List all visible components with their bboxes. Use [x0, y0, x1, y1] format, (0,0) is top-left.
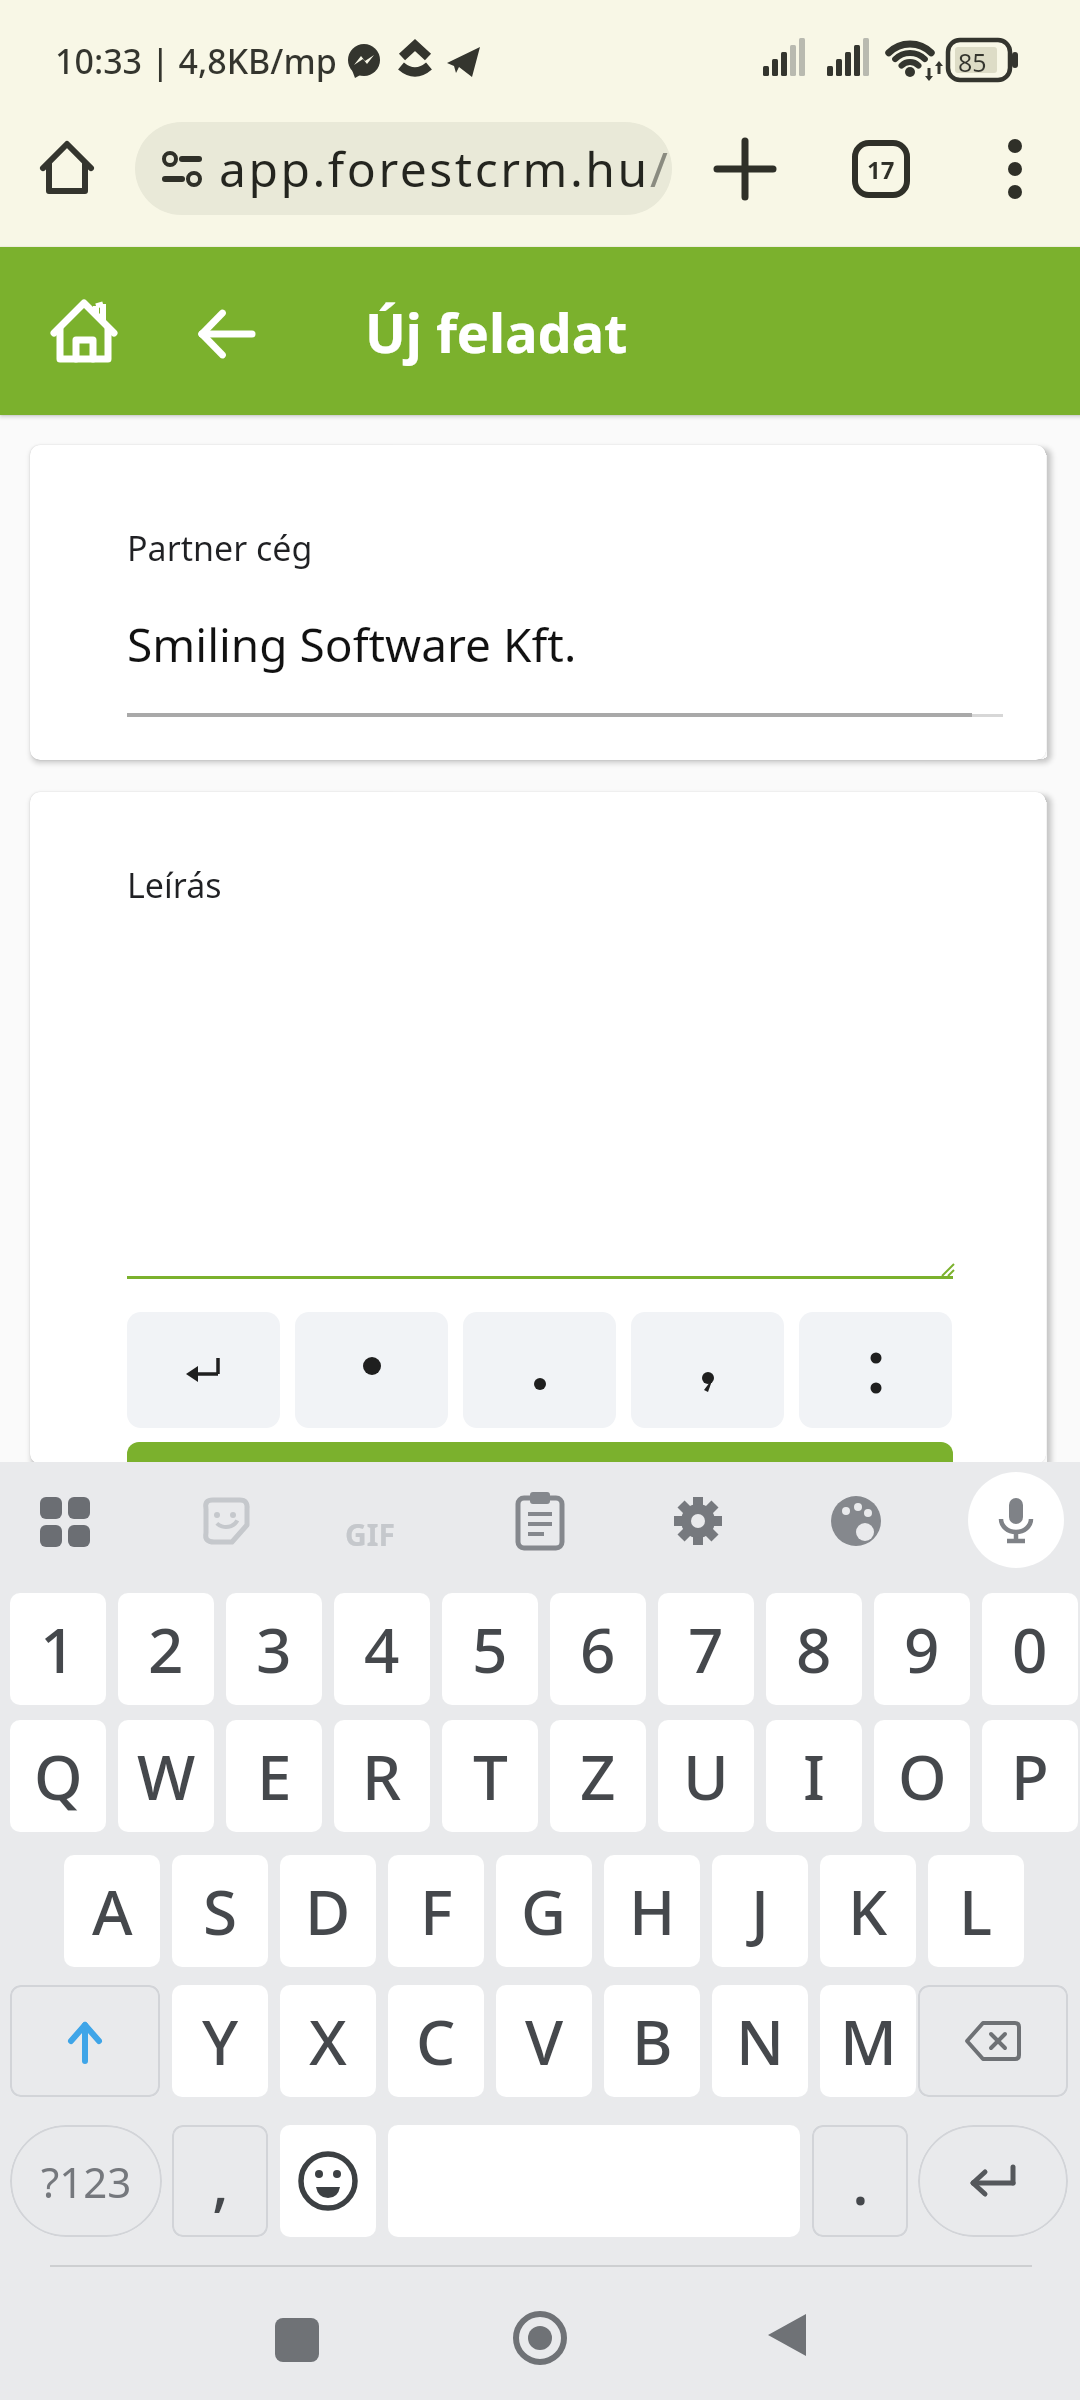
staticText: V [525, 1999, 564, 2083]
button[interactable]: 9 [874, 1593, 970, 1705]
staticText: J [751, 1869, 769, 1953]
staticText: . [852, 2139, 869, 2223]
button[interactable]: R [334, 1720, 430, 1832]
button[interactable] [51, 299, 117, 365]
button[interactable]: E [226, 1720, 322, 1832]
button[interactable] [918, 1985, 1068, 2097]
staticText: W [137, 1734, 196, 1818]
staticText: Új feladat [365, 295, 628, 369]
staticText: X [309, 1999, 347, 2083]
button[interactable] [512, 2310, 568, 2366]
staticText: Smiling Software Kft. [127, 613, 577, 676]
button[interactable]: P [982, 1720, 1078, 1832]
button[interactable]: A [64, 1855, 160, 1967]
button[interactable]: J [712, 1855, 808, 1967]
button[interactable]: app.forestcrm.hu [135, 122, 672, 215]
button[interactable] [764, 2312, 810, 2358]
button[interactable]: H [604, 1855, 700, 1967]
staticText: app.forestcrm.hu [219, 136, 650, 201]
staticText: K [848, 1869, 888, 1953]
button[interactable] [40, 1497, 90, 1547]
button[interactable] [10, 1985, 160, 2097]
button[interactable]: K [820, 1855, 916, 1967]
button[interactable] [295, 1312, 448, 1428]
button[interactable] [200, 1495, 252, 1547]
button[interactable]: 0 [982, 1593, 1078, 1705]
button[interactable] [968, 1472, 1064, 1568]
button[interactable]: Q [10, 1720, 106, 1832]
staticText: 0 [1012, 1607, 1048, 1691]
button[interactable]: . [812, 2125, 908, 2237]
button[interactable]: I [766, 1720, 862, 1832]
button[interactable]: V [496, 1985, 592, 2097]
button[interactable]: 1 [10, 1593, 106, 1705]
staticText: 4 [364, 1607, 400, 1691]
button[interactable]: N [712, 1985, 808, 2097]
button[interactable]: 6 [550, 1593, 646, 1705]
button[interactable] [127, 1312, 280, 1428]
staticText: C [416, 1999, 456, 2083]
button[interactable]: 4 [334, 1593, 430, 1705]
staticText: Partner cég [127, 525, 313, 571]
staticText: , [212, 2139, 229, 2223]
staticText: S [203, 1869, 238, 1953]
button[interactable]: C [388, 1985, 484, 2097]
button[interactable]: G [496, 1855, 592, 1967]
button[interactable]: GIF [345, 1514, 395, 1555]
button[interactable]: 7 [658, 1593, 754, 1705]
button[interactable]: 3 [226, 1593, 322, 1705]
button[interactable]: T [442, 1720, 538, 1832]
button[interactable]: W [118, 1720, 214, 1832]
button[interactable] [918, 2125, 1068, 2237]
staticText: O [898, 1734, 947, 1818]
button[interactable]: M [820, 1985, 916, 2097]
button[interactable]: B [604, 1985, 700, 2097]
button[interactable]: Y [172, 1985, 268, 2097]
staticText: E [257, 1734, 292, 1818]
button[interactable]: 2 [118, 1593, 214, 1705]
button[interactable] [672, 1495, 724, 1547]
staticText: 85 [958, 45, 987, 79]
button[interactable]: L [928, 1855, 1024, 1967]
button[interactable]: , [172, 2125, 268, 2237]
staticText: 2 [148, 1607, 184, 1691]
button[interactable]: 8 [766, 1593, 862, 1705]
button[interactable] [715, 139, 775, 199]
button[interactable] [515, 1492, 565, 1550]
staticText: B [632, 1999, 673, 2083]
staticText: 8 [796, 1607, 832, 1691]
staticText: L [959, 1869, 993, 1953]
staticText: G [521, 1869, 567, 1953]
button[interactable] [198, 305, 256, 363]
button[interactable] [631, 1312, 784, 1428]
button[interactable] [40, 140, 94, 194]
staticText: 17 [867, 153, 895, 186]
staticText: I [803, 1734, 825, 1818]
button[interactable]: O [874, 1720, 970, 1832]
staticText: R [362, 1734, 402, 1818]
button[interactable]: 17 [853, 141, 909, 197]
staticText: / [650, 136, 668, 201]
button[interactable]: S [172, 1855, 268, 1967]
button[interactable]: Z [550, 1720, 646, 1832]
staticText: P [1011, 1734, 1049, 1818]
button[interactable] [995, 139, 1035, 199]
staticText: Q [34, 1734, 83, 1818]
button[interactable]: U [658, 1720, 754, 1832]
staticText: 7 [688, 1607, 724, 1691]
button[interactable] [127, 1442, 953, 1464]
button[interactable] [463, 1312, 616, 1428]
staticText: T [473, 1734, 508, 1818]
button[interactable] [280, 2125, 376, 2237]
button[interactable]: ?123 [10, 2125, 162, 2237]
staticText: M [840, 1999, 897, 2083]
staticText: 3 [256, 1607, 292, 1691]
button[interactable]: D [280, 1855, 376, 1967]
button[interactable] [830, 1495, 882, 1547]
button[interactable]: X [280, 1985, 376, 2097]
button[interactable]: 5 [442, 1593, 538, 1705]
button[interactable] [275, 2318, 319, 2362]
button[interactable]: F [388, 1855, 484, 1967]
button[interactable] [799, 1312, 952, 1428]
